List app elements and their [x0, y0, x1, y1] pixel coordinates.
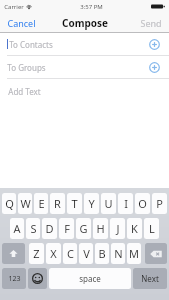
staticText: M [129, 246, 139, 261]
staticText: I [124, 196, 128, 211]
button[interactable]: Next [133, 268, 167, 289]
staticText: O [138, 196, 147, 211]
button[interactable]: A [10, 218, 24, 239]
button[interactable]: Emoji [28, 268, 47, 289]
staticText: A [13, 221, 21, 236]
button[interactable]: To Contacts [0, 33, 169, 55]
staticText: G [79, 221, 88, 236]
staticText: B [98, 246, 106, 261]
button[interactable]: W [18, 193, 32, 214]
staticText: Q [5, 196, 14, 211]
button[interactable]: U [101, 193, 116, 214]
staticText: Y [88, 196, 95, 211]
staticText: H [96, 221, 105, 236]
button[interactable]: G [76, 218, 91, 239]
staticText: F [64, 221, 70, 236]
button[interactable]: Add To Contacts [144, 34, 164, 54]
button[interactable]: N [111, 243, 125, 264]
staticText: 3:57 PM [80, 3, 103, 11]
staticText: Cancel [7, 17, 36, 29]
staticText: X [50, 246, 57, 261]
button[interactable]: S [26, 218, 40, 239]
staticText: Carrier [4, 3, 24, 11]
button[interactable]: E [34, 193, 48, 214]
staticText: S [30, 221, 37, 236]
button[interactable]: F [59, 218, 74, 239]
staticText: Z [33, 246, 40, 261]
staticText: P [156, 196, 163, 211]
button[interactable]: O [135, 193, 150, 214]
button[interactable]: Shift [2, 243, 25, 264]
button[interactable]: Cancel [0, 14, 43, 32]
button[interactable]: M [127, 243, 141, 264]
staticText: V [83, 246, 90, 261]
staticText: To Groups [7, 62, 46, 73]
button[interactable]: P [152, 193, 167, 214]
button[interactable]: T [67, 193, 82, 214]
staticText: W [20, 196, 31, 211]
button[interactable]: R [50, 193, 65, 214]
button[interactable]: Send [133, 14, 169, 32]
staticText: T [71, 196, 78, 211]
staticText: K [131, 221, 138, 236]
button[interactable]: Z [29, 243, 44, 264]
staticText: To Contacts [9, 39, 53, 50]
staticText: C [67, 246, 74, 261]
button[interactable]: 123 [2, 268, 26, 289]
staticText: D [45, 221, 54, 236]
staticText: 123 [8, 274, 21, 284]
button[interactable]: L [144, 218, 159, 239]
button[interactable]: X [46, 243, 61, 264]
button[interactable]: Add To Groups [144, 57, 164, 77]
staticText: Compose [62, 16, 108, 30]
staticText: space [79, 273, 101, 284]
button[interactable]: H [93, 218, 108, 239]
staticText: J [116, 221, 120, 236]
button[interactable]: D [42, 218, 57, 239]
button[interactable]: To Groups [0, 56, 169, 78]
button[interactable]: Backspace [145, 243, 167, 264]
staticText: Add Text [8, 86, 41, 97]
staticText: E [38, 196, 45, 211]
button[interactable]: C [63, 243, 77, 264]
staticText: Next [141, 273, 159, 284]
button[interactable]: Add Text [0, 79, 169, 188]
button[interactable]: Y [84, 193, 99, 214]
button[interactable]: Q [2, 193, 16, 214]
staticText: N [114, 246, 123, 261]
staticText: R [54, 196, 61, 211]
button[interactable]: space [49, 268, 131, 289]
staticText: Send [140, 17, 162, 29]
staticText: L [149, 221, 155, 236]
button[interactable]: K [127, 218, 142, 239]
button[interactable]: J [110, 218, 125, 239]
button[interactable]: I [118, 193, 133, 214]
button[interactable]: B [95, 243, 109, 264]
button[interactable]: V [79, 243, 93, 264]
staticText: U [104, 196, 113, 211]
